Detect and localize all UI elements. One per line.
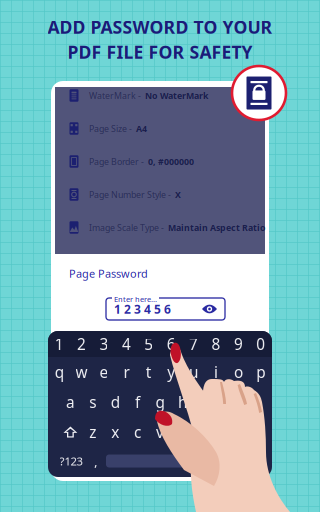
staticText: ?123 — [59, 453, 82, 469]
staticText: 7 — [189, 334, 198, 354]
staticText: k — [223, 392, 231, 412]
button[interactable]: Page Border - — [55, 145, 265, 178]
staticText: Page Number Style - — [89, 188, 175, 200]
staticText: o — [234, 362, 243, 382]
staticText: Enter here... — [114, 294, 157, 304]
button[interactable]: WaterMark - — [55, 79, 265, 112]
staticText: A4 — [136, 122, 147, 134]
button[interactable]: Protected PDF — [231, 65, 287, 121]
staticText: n — [200, 422, 209, 442]
staticText: w — [76, 362, 88, 382]
staticText: c — [134, 422, 141, 442]
staticText: 4 — [122, 334, 131, 354]
staticText: p — [256, 362, 265, 382]
button[interactable]: Page Size - — [55, 112, 265, 145]
staticText: 1 — [55, 334, 64, 354]
staticText: e — [99, 362, 108, 382]
staticText: PDF FILE FOR SAFETY — [67, 40, 252, 64]
staticText: d — [111, 392, 120, 412]
staticText: h — [178, 392, 187, 412]
button[interactable]: Image Scale Type - — [55, 211, 265, 244]
staticText: x — [111, 422, 119, 442]
staticText: 9 — [234, 334, 243, 354]
staticText: 1 2 3 4 5 6 — [114, 301, 171, 317]
staticText: , — [94, 452, 98, 470]
staticText: u — [189, 362, 198, 382]
staticText: Page Border - — [89, 155, 148, 167]
staticText: s — [89, 392, 96, 412]
staticText: a — [66, 392, 75, 412]
staticText: g — [155, 392, 164, 412]
staticText: r — [123, 362, 129, 382]
staticText: q — [55, 362, 64, 382]
staticText: 0 — [256, 334, 265, 354]
staticText: i — [214, 362, 218, 382]
staticText: 2 — [77, 334, 86, 354]
staticText: X — [175, 188, 181, 200]
staticText: ADD PASSWORD TO YOUR — [47, 15, 272, 39]
staticText: 3 — [99, 334, 108, 354]
button[interactable]: Page Number Style - — [55, 178, 265, 211]
staticText: Page Password — [69, 266, 148, 281]
staticText: f — [135, 392, 140, 412]
staticText: z — [89, 422, 96, 442]
staticText: WaterMark - — [89, 89, 145, 101]
staticText: 0, #000000 — [148, 155, 194, 167]
staticText: 6 — [167, 334, 176, 354]
staticText: No WaterMark — [145, 89, 208, 101]
staticText: 8 — [211, 334, 220, 354]
staticText: Maintain Aspect Ratio — [168, 221, 266, 233]
staticText: Page Size - — [89, 122, 136, 134]
staticText: 5 — [144, 334, 153, 354]
staticText: v — [156, 422, 164, 442]
staticText: y — [167, 362, 175, 382]
staticText: Image Scale Type - — [89, 221, 168, 233]
staticText: t — [146, 362, 152, 382]
